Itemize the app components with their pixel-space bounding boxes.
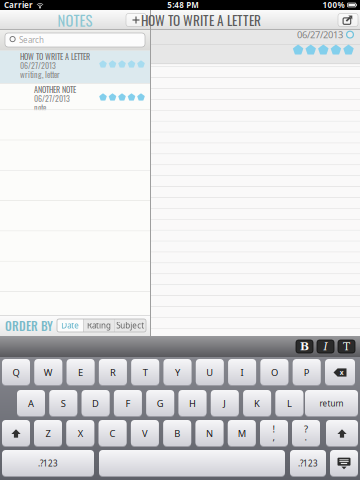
staticText: T [343, 340, 350, 353]
button[interactable]: N [195, 420, 223, 447]
button[interactable]: Shift [326, 420, 358, 447]
button[interactable]: Q [2, 359, 30, 386]
staticText: Q [12, 366, 19, 379]
staticText: G [157, 397, 164, 410]
button[interactable]: Text style [338, 340, 355, 353]
staticText: N [206, 427, 213, 440]
button[interactable]: X [66, 420, 94, 447]
staticText: B [300, 340, 309, 353]
staticText: writing, letter [20, 69, 60, 80]
button[interactable]: H [178, 390, 206, 417]
staticText: ! [272, 423, 275, 435]
staticText: V [142, 427, 148, 440]
staticText: , [272, 431, 275, 443]
staticText: 100% [322, 0, 344, 10]
button[interactable]: G [146, 390, 174, 417]
button[interactable]: HOW TO WRITE A LETTER [0, 50, 150, 83]
button[interactable]: Rating [84, 319, 114, 332]
button[interactable]: .?123 [290, 450, 326, 477]
staticText: 06/27/2013 [20, 60, 56, 71]
staticText: I [241, 366, 244, 379]
staticText: . [304, 431, 307, 443]
staticText: ? [304, 423, 308, 435]
staticText: ORDER BY [5, 317, 53, 334]
button[interactable]: I [228, 359, 256, 386]
button[interactable]: Share [338, 13, 358, 26]
staticText: HOW TO WRITE A LETTER [141, 10, 261, 30]
staticText: Search [19, 35, 44, 45]
button[interactable]: O [260, 359, 288, 386]
staticText: Carrier [4, 0, 33, 10]
staticText: L [287, 397, 292, 410]
staticText: .?123 [38, 458, 58, 469]
staticText: J [223, 397, 226, 410]
staticText: B [174, 427, 180, 440]
staticText: Y [175, 366, 180, 379]
button[interactable]: Subject [115, 319, 146, 332]
button[interactable]: L [275, 390, 303, 417]
staticText: M [238, 427, 246, 440]
button[interactable]: C [99, 420, 127, 447]
button[interactable]: ! [260, 420, 288, 447]
staticText: ANOTHER NOTE [34, 84, 76, 95]
staticText: S [61, 397, 66, 410]
button[interactable]: S [49, 390, 77, 417]
button[interactable]: Italic [317, 340, 334, 353]
staticText: H [189, 397, 196, 410]
button[interactable]: Delete [325, 359, 355, 386]
button[interactable]: Z [34, 420, 62, 447]
staticText: 5:48 PM [167, 0, 199, 10]
staticText: A [28, 397, 34, 410]
button[interactable]: U [196, 359, 224, 386]
button[interactable]: B [163, 420, 191, 447]
staticText: W [44, 366, 53, 379]
staticText: F [125, 397, 130, 410]
button[interactable]: Hide keyboard [330, 450, 358, 477]
button[interactable]: New note [126, 13, 146, 26]
staticText: Date [61, 320, 79, 331]
button[interactable]: Shift [2, 420, 30, 447]
staticText: E [78, 366, 83, 379]
button[interactable]: T [131, 359, 159, 386]
button[interactable] [99, 450, 285, 477]
button[interactable]: W [34, 359, 62, 386]
staticText: U [206, 366, 213, 379]
staticText: 06/27/2013 [34, 93, 70, 104]
staticText: Subject [116, 320, 144, 331]
button[interactable]: F [114, 390, 142, 417]
staticText: T [143, 366, 148, 379]
staticText: R [110, 366, 116, 379]
button[interactable]: return [305, 390, 358, 417]
staticText: Z [45, 427, 50, 440]
button[interactable]: Bold [296, 340, 313, 353]
staticText: X [78, 427, 83, 440]
staticText: C [110, 427, 116, 440]
staticText: K [254, 397, 260, 410]
button[interactable]: ANOTHER NOTE [0, 83, 150, 113]
staticText: 06/27/2013 [297, 28, 343, 41]
button[interactable]: .?123 [2, 450, 94, 477]
staticText: D [92, 397, 99, 410]
staticText: HOW TO WRITE A LETTER [20, 51, 90, 62]
button[interactable]: Date [57, 319, 83, 332]
button[interactable]: K [243, 390, 271, 417]
button[interactable]: ? [292, 420, 320, 447]
button[interactable]: R [99, 359, 127, 386]
staticText: x [340, 368, 344, 377]
button[interactable]: E [67, 359, 95, 386]
staticText: NOTES [57, 9, 92, 31]
staticText: .?123 [298, 458, 318, 469]
staticText: I [323, 340, 327, 353]
button[interactable]: D [82, 390, 110, 417]
button[interactable]: V [131, 420, 159, 447]
staticText: return [319, 398, 343, 409]
button[interactable]: J [211, 390, 239, 417]
button[interactable]: P [293, 359, 321, 386]
button[interactable]: A [17, 390, 45, 417]
staticText: O [271, 366, 278, 379]
button[interactable]: Y [163, 359, 191, 386]
staticText: Rating [87, 320, 111, 331]
staticText: note [34, 102, 46, 113]
staticText: P [304, 366, 310, 379]
button[interactable]: M [228, 420, 256, 447]
